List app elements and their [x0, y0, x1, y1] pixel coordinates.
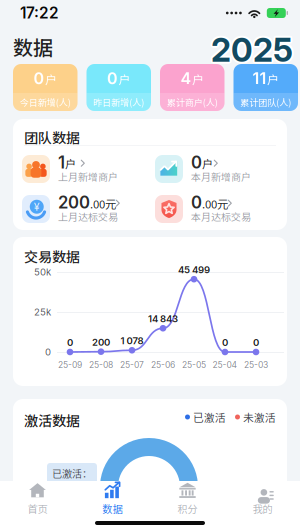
button[interactable]: 0 [13, 64, 77, 111]
staticText: 11 [252, 69, 266, 88]
staticText: 25-04 [212, 360, 237, 370]
staticText: 数据 [102, 501, 122, 516]
button[interactable]: 1 [22, 155, 148, 185]
staticText: .00元 [90, 195, 116, 212]
button[interactable]: ¥ [22, 195, 148, 225]
staticText: 0 [191, 192, 202, 213]
staticText: 2025 [210, 31, 292, 71]
staticText: 户 [118, 70, 130, 88]
button[interactable]: 0 [86, 64, 151, 111]
staticText: 昨日新增(人) [93, 95, 144, 108]
staticText: 0 [222, 337, 228, 348]
staticText: 0 [253, 337, 259, 348]
staticText: 本月达标交易 [191, 209, 251, 224]
staticText: 2025 [212, 29, 294, 68]
staticText: 户 [65, 155, 76, 172]
staticText: 0 [191, 152, 202, 173]
staticText: 1 [58, 152, 65, 173]
staticText: 首页 [27, 501, 47, 516]
staticText: 2025 [212, 31, 294, 71]
staticText: 累计商户(人) [167, 95, 218, 108]
button[interactable]: 0 [155, 195, 281, 225]
staticText: 0 [107, 69, 118, 88]
staticText: 25-05 [182, 360, 206, 370]
staticText: 户 [202, 155, 213, 172]
staticText: 25-06 [151, 360, 175, 370]
staticText: 2025 [211, 28, 293, 67]
staticText: 累计团队(人) [240, 95, 291, 108]
staticText: 2025 [211, 30, 293, 69]
staticText: 积分 [177, 501, 197, 516]
staticText: 今日新增(人) [20, 95, 71, 108]
staticText: 激活数据 [24, 410, 80, 430]
staticText: 上月达标交易 [58, 209, 118, 224]
button[interactable]: 积分 [150, 481, 225, 516]
staticText: 25-07 [120, 360, 144, 370]
staticText: ¥ [34, 200, 40, 213]
staticText: 户 [267, 70, 279, 88]
staticText: 0 [33, 69, 44, 88]
button[interactable]: 11 [233, 64, 298, 111]
staticText: 25k [34, 306, 51, 318]
staticText: 1 078 [120, 335, 143, 347]
staticText: 200 [58, 192, 90, 213]
staticText: 0 [67, 337, 73, 348]
staticText: 45 499 [178, 264, 210, 275]
staticText: .00元 [202, 195, 228, 212]
staticText: 25-08 [89, 360, 113, 370]
staticText: 我的 [252, 501, 272, 516]
staticText: 上月新增商户 [58, 169, 118, 184]
staticText: 交易数据 [24, 246, 80, 266]
staticText: 25-09 [58, 360, 82, 370]
staticText: 已激活 [193, 409, 226, 425]
button[interactable]: 4 [160, 64, 224, 111]
staticText: 户 [192, 70, 204, 88]
button[interactable]: 首页 [0, 481, 75, 516]
button[interactable]: 我的 [225, 481, 300, 516]
staticText: 团队数据 [24, 127, 80, 147]
staticText: 14 843 [148, 313, 178, 324]
staticText: 本月新增商户 [191, 169, 251, 184]
staticText: 户 [45, 70, 57, 88]
staticText: 2025 [211, 32, 293, 71]
staticText: 2025 [210, 29, 292, 68]
button[interactable]: 数据 [75, 481, 150, 516]
staticText: 25-03 [244, 360, 268, 370]
staticText: 数据 [13, 32, 53, 61]
staticText: 已激活： [52, 466, 92, 480]
staticText: 17:22 [20, 4, 59, 22]
staticText: 2025 [209, 30, 291, 69]
staticText: 未激活 [243, 409, 276, 425]
staticText: 200 [92, 336, 110, 348]
staticText: 4 [180, 69, 191, 88]
button[interactable]: 0 [155, 155, 281, 185]
staticText: 50k [34, 266, 51, 278]
staticText: 2025 [213, 30, 295, 69]
staticText: 0 [45, 346, 51, 358]
